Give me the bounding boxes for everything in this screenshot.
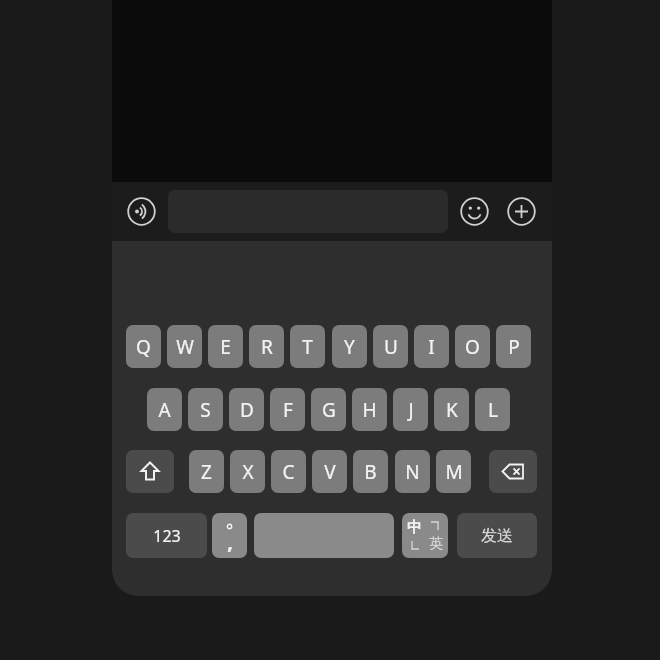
- button[interactable]: R: [249, 325, 284, 368]
- button[interactable]: Emoji: [460, 197, 489, 226]
- button[interactable]: P: [496, 325, 531, 368]
- staticText: J: [408, 397, 414, 423]
- button[interactable]: S: [188, 388, 223, 431]
- staticText: H: [362, 397, 377, 423]
- button[interactable]: K: [434, 388, 469, 431]
- button[interactable]: Voice input: [127, 197, 156, 226]
- button[interactable]: T: [290, 325, 325, 368]
- button[interactable]: X: [230, 450, 265, 493]
- staticText: B: [364, 459, 377, 485]
- button[interactable]: Z: [189, 450, 224, 493]
- staticText: O: [465, 334, 480, 360]
- staticText: X: [242, 459, 254, 485]
- button[interactable]: 发送: [457, 513, 537, 558]
- staticText: P: [508, 334, 520, 360]
- staticText: A: [158, 397, 171, 423]
- button[interactable]: Backspace: [489, 450, 537, 493]
- button[interactable]: E: [208, 325, 243, 368]
- staticText: Q: [136, 334, 151, 360]
- staticText: 发送: [481, 526, 513, 546]
- button[interactable]: D: [229, 388, 264, 431]
- button[interactable]: H: [352, 388, 387, 431]
- button[interactable]: Comma: [212, 513, 247, 558]
- button[interactable]: B: [353, 450, 388, 493]
- button[interactable]: Space: [254, 513, 394, 558]
- button[interactable]: N: [395, 450, 430, 493]
- staticText: N: [405, 459, 420, 485]
- staticText: F: [283, 397, 293, 423]
- staticText: L: [488, 397, 498, 423]
- staticText: W: [176, 334, 194, 360]
- button[interactable]: F: [270, 388, 305, 431]
- staticText: T: [302, 334, 313, 360]
- button[interactable]: Shift: [126, 450, 174, 493]
- button[interactable]: W: [167, 325, 202, 368]
- staticText: Y: [344, 334, 355, 360]
- button[interactable]: Switch Chinese English: [402, 513, 448, 558]
- staticText: V: [324, 459, 336, 485]
- staticText: M: [445, 459, 463, 485]
- button[interactable]: C: [271, 450, 306, 493]
- staticText: Z: [201, 459, 212, 485]
- staticText: 英: [429, 535, 443, 553]
- staticText: G: [322, 397, 336, 423]
- staticText: K: [446, 397, 458, 423]
- button[interactable]: O: [455, 325, 490, 368]
- staticText: 123: [153, 525, 181, 547]
- staticText: 中: [407, 518, 422, 537]
- button[interactable]: G: [311, 388, 346, 431]
- staticText: U: [384, 334, 398, 360]
- button[interactable]: M: [436, 450, 471, 493]
- staticText: R: [261, 334, 273, 360]
- staticText: D: [240, 397, 254, 423]
- button[interactable]: J: [393, 388, 428, 431]
- button[interactable]: Y: [332, 325, 367, 368]
- button[interactable]: 123: [126, 513, 207, 558]
- button[interactable]: U: [373, 325, 408, 368]
- button[interactable]: Add attachment: [507, 197, 536, 226]
- staticText: E: [220, 334, 231, 360]
- button[interactable]: A: [147, 388, 182, 431]
- button[interactable]: V: [312, 450, 347, 493]
- button[interactable]: I: [414, 325, 449, 368]
- staticText: S: [200, 397, 211, 423]
- button[interactable]: Q: [126, 325, 161, 368]
- staticText: C: [282, 459, 295, 485]
- button[interactable]: L: [475, 388, 510, 431]
- staticText: I: [428, 334, 435, 360]
- staticText: ,: [227, 528, 233, 555]
